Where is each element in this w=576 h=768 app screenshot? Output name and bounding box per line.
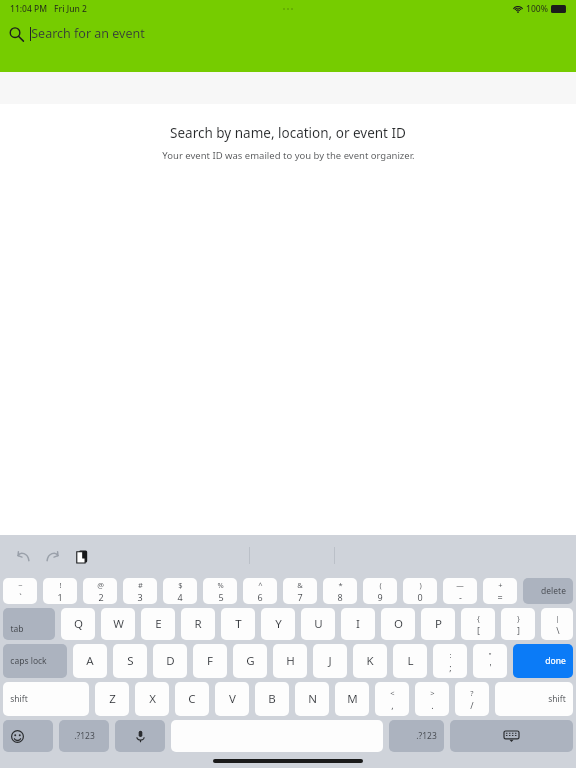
staticText: E <box>155 616 162 632</box>
button[interactable]: T <box>221 608 255 640</box>
button[interactable]: @ <box>83 578 117 604</box>
button[interactable]: .?123 <box>59 720 109 752</box>
staticText: D <box>166 653 175 669</box>
button[interactable]: * <box>323 578 357 604</box>
staticText: / <box>470 699 474 711</box>
staticText: L <box>407 653 414 669</box>
button[interactable]: V <box>215 682 249 716</box>
button[interactable]: Paste <box>69 543 95 569</box>
button[interactable]: : <box>433 644 467 678</box>
staticText: G <box>246 653 255 669</box>
button[interactable]: E <box>141 608 175 640</box>
button[interactable]: S <box>113 644 147 678</box>
staticText: Search for an event <box>31 25 145 42</box>
staticText: $ <box>178 580 183 590</box>
button[interactable]: Undo <box>10 543 36 569</box>
button[interactable]: D <box>153 644 187 678</box>
button[interactable]: R <box>181 608 215 640</box>
button[interactable]: Dictate <box>115 720 165 752</box>
staticText: O <box>394 616 403 632</box>
button[interactable]: caps lock <box>3 644 67 678</box>
staticText: H <box>286 653 295 669</box>
staticText: 5 <box>218 591 224 603</box>
staticText: shift <box>10 693 28 705</box>
button[interactable]: & <box>283 578 317 604</box>
button[interactable]: } <box>501 608 535 640</box>
staticText: 100% <box>526 3 548 15</box>
button[interactable]: F <box>193 644 227 678</box>
staticText: V <box>229 691 236 707</box>
button[interactable]: I <box>341 608 375 640</box>
staticText: 6 <box>257 591 263 603</box>
staticText: @ <box>97 580 104 590</box>
staticText: # <box>138 580 143 590</box>
button[interactable]: | <box>541 608 573 640</box>
button[interactable]: { <box>461 608 495 640</box>
button[interactable]: M <box>335 682 369 716</box>
button[interactable]: L <box>393 644 427 678</box>
button[interactable]: K <box>353 644 387 678</box>
button[interactable]: # <box>123 578 157 604</box>
staticText: ; <box>449 661 452 673</box>
button[interactable]: delete <box>523 578 573 604</box>
button[interactable]: " <box>473 644 507 678</box>
staticText: ' <box>489 661 492 673</box>
button[interactable]: > <box>415 682 449 716</box>
staticText: ~ <box>18 580 23 590</box>
staticText: { <box>477 613 480 623</box>
staticText: 3 <box>137 591 143 603</box>
button[interactable]: O <box>381 608 415 640</box>
button[interactable]: $ <box>163 578 197 604</box>
staticText: R <box>194 616 202 632</box>
staticText: ! <box>59 580 62 590</box>
button[interactable]: ? <box>455 682 489 716</box>
button[interactable]: ( <box>363 578 397 604</box>
button[interactable]: shift <box>495 682 573 716</box>
staticText: 4 <box>177 591 183 603</box>
button[interactable]: Hide keyboard <box>450 720 573 752</box>
button[interactable]: Z <box>95 682 129 716</box>
button[interactable]: done <box>513 644 573 678</box>
button[interactable]: .?123 <box>389 720 444 752</box>
button[interactable]: Q <box>61 608 95 640</box>
staticText: | <box>555 613 560 623</box>
button[interactable]: + <box>483 578 517 604</box>
staticText: ? <box>470 688 474 698</box>
staticText: Y <box>275 616 282 632</box>
staticText: - <box>459 591 462 603</box>
button[interactable]: shift <box>3 682 89 716</box>
staticText: < <box>390 688 395 698</box>
button[interactable]: N <box>295 682 329 716</box>
staticText: P <box>435 616 442 632</box>
button[interactable]: ^ <box>243 578 277 604</box>
button[interactable]: P <box>421 608 455 640</box>
button[interactable]: A <box>73 644 107 678</box>
button[interactable]: Search for an event <box>0 18 576 72</box>
button[interactable]: Emoji <box>3 720 53 752</box>
button[interactable]: Redo <box>39 543 65 569</box>
button[interactable]: H <box>273 644 307 678</box>
staticText: 8 <box>337 591 343 603</box>
button[interactable]: tab <box>3 608 55 640</box>
button[interactable]: ~ <box>3 578 37 604</box>
button[interactable]: ! <box>43 578 77 604</box>
button[interactable]: ) <box>403 578 437 604</box>
button[interactable]: J <box>313 644 347 678</box>
staticText: X <box>149 691 156 707</box>
staticText: ) <box>419 580 422 590</box>
button[interactable]: G <box>233 644 267 678</box>
staticText: C <box>188 691 196 707</box>
staticText: * <box>338 580 343 590</box>
button[interactable]: — <box>443 578 477 604</box>
staticText: U <box>314 616 323 632</box>
button[interactable]: X <box>135 682 169 716</box>
staticText: tab <box>10 623 24 635</box>
button[interactable]: < <box>375 682 409 716</box>
button[interactable]: Y <box>261 608 295 640</box>
button[interactable]: U <box>301 608 335 640</box>
button[interactable]: % <box>203 578 237 604</box>
button[interactable]: C <box>175 682 209 716</box>
button[interactable]: W <box>101 608 135 640</box>
button[interactable]: B <box>255 682 289 716</box>
